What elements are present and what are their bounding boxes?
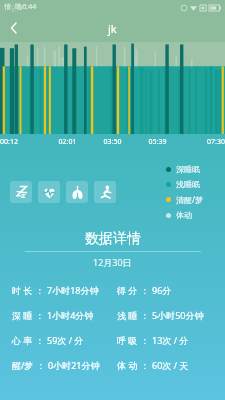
button[interactable]: Sleep [10, 181, 32, 203]
staticText: ： [33, 284, 47, 296]
staticText: 数据详情 [85, 230, 141, 248]
staticText: 浅睡眠 [176, 179, 200, 189]
staticText: 59次 / 分 [47, 334, 84, 346]
staticText: ： [138, 359, 152, 371]
staticText: 07:30 [180, 137, 225, 147]
staticText: 得 分 [117, 284, 138, 296]
staticText: 情္晚6:44 [4, 2, 37, 13]
button[interactable]: Back [0, 14, 28, 42]
staticText: 呼 吸 [117, 334, 138, 346]
staticText: 60次 / 天 [152, 359, 189, 371]
staticText: 5小时50分钟 [152, 309, 204, 321]
staticText: 02:01 [45, 137, 90, 147]
staticText: ： [33, 334, 47, 346]
staticText: 05:39 [135, 137, 180, 147]
staticText: ： [34, 359, 48, 371]
staticText: 03:50 [90, 137, 135, 147]
staticText: 0小时21分钟 [48, 359, 100, 371]
button[interactable]: Heart rate [38, 181, 60, 203]
staticText: ： [138, 334, 152, 346]
staticText: 深睡眠 [176, 164, 200, 174]
staticText: ： [33, 309, 47, 321]
staticText: jk [108, 21, 117, 36]
staticText: 13次 / 分 [152, 334, 189, 346]
staticText: ： [138, 284, 152, 296]
staticText: 醒/梦 [12, 359, 34, 371]
staticText: 时 长 [12, 284, 33, 296]
staticText: 心 率 [12, 334, 33, 346]
staticText: 清醒/梦 [176, 194, 203, 205]
button[interactable]: Body movement [94, 181, 116, 203]
staticText: 体动 [176, 210, 192, 220]
staticText: 12月30日 [93, 256, 132, 268]
staticText: 96分 [152, 284, 172, 296]
staticText: 00:12 [0, 137, 45, 147]
staticText: 1小时4分钟 [47, 309, 94, 321]
staticText: 深 睡 [12, 309, 33, 321]
staticText: 体 动 [117, 359, 138, 371]
staticText: ： [138, 309, 152, 321]
staticText: 浅 睡 [117, 309, 138, 321]
staticText: 7小时18分钟 [47, 284, 99, 296]
button[interactable]: Breathing [66, 181, 88, 203]
